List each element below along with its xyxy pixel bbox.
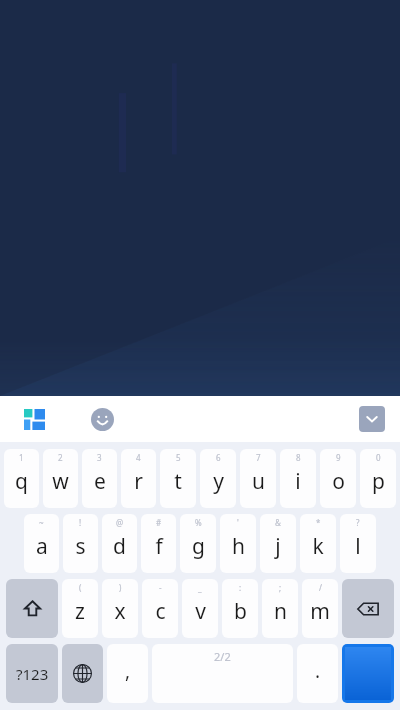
- button[interactable]: 1: [4, 449, 39, 508]
- staticText: #: [156, 517, 162, 528]
- staticText: n: [274, 597, 287, 626]
- staticText: u: [252, 467, 265, 496]
- staticText: ): [119, 582, 122, 593]
- button[interactable]: (: [62, 579, 98, 638]
- staticText: e: [94, 467, 106, 496]
- staticText: s: [75, 532, 86, 561]
- staticText: ;: [279, 582, 282, 593]
- staticText: ~: [39, 517, 44, 528]
- staticText: k: [312, 532, 324, 561]
- staticText: t: [174, 467, 182, 496]
- button[interactable]: Change language: [62, 644, 103, 703]
- staticText: r: [134, 467, 143, 496]
- staticText: !: [79, 517, 82, 528]
- staticText: p: [372, 467, 385, 496]
- staticText: 1: [19, 452, 24, 463]
- button[interactable]: -: [142, 579, 178, 638]
- button[interactable]: ?: [340, 514, 376, 573]
- button[interactable]: 8: [280, 449, 316, 508]
- button[interactable]: Shift: [6, 579, 58, 638]
- staticText: @: [116, 517, 124, 528]
- staticText: %: [195, 517, 202, 528]
- button[interactable]: ': [220, 514, 256, 573]
- staticText: ,: [125, 658, 131, 684]
- button[interactable]: 0: [360, 449, 396, 508]
- button[interactable]: Backspace: [342, 579, 394, 638]
- staticText: 3: [97, 452, 102, 463]
- staticText: .: [315, 658, 321, 684]
- staticText: d: [113, 532, 126, 561]
- button[interactable]: %: [180, 514, 216, 573]
- staticText: v: [195, 597, 206, 626]
- staticText: l: [355, 532, 361, 561]
- button[interactable]: *: [300, 514, 336, 573]
- button[interactable]: ~: [24, 514, 59, 573]
- button[interactable]: &: [260, 514, 296, 573]
- staticText: /: [319, 582, 322, 593]
- staticText: 0: [376, 452, 381, 463]
- staticText: z: [75, 597, 85, 626]
- staticText: y: [213, 467, 224, 496]
- button[interactable]: 9: [320, 449, 356, 508]
- button[interactable]: 5: [160, 449, 196, 508]
- button[interactable]: /: [302, 579, 338, 638]
- button[interactable]: ?123: [6, 644, 58, 703]
- button[interactable]: @: [102, 514, 137, 573]
- staticText: (: [79, 582, 82, 593]
- button[interactable]: ,: [107, 644, 148, 703]
- button[interactable]: ): [102, 579, 138, 638]
- staticText: g: [192, 532, 205, 561]
- staticText: *: [316, 517, 321, 528]
- button[interactable]: _: [182, 579, 218, 638]
- staticText: 2: [58, 452, 63, 463]
- staticText: x: [114, 597, 126, 626]
- staticText: _: [198, 582, 202, 593]
- button[interactable]: 4: [121, 449, 156, 508]
- staticText: ?123: [16, 664, 49, 684]
- button[interactable]: .: [297, 644, 338, 703]
- staticText: 8: [296, 452, 301, 463]
- staticText: 6: [216, 452, 221, 463]
- staticText: c: [155, 597, 166, 626]
- button[interactable]: 2: [43, 449, 78, 508]
- staticText: f: [155, 532, 163, 561]
- button[interactable]: Stickers: [18, 403, 50, 435]
- button[interactable]: 7: [240, 449, 276, 508]
- staticText: j: [275, 532, 281, 561]
- button[interactable]: Hide keyboard: [359, 406, 385, 432]
- staticText: 7: [256, 452, 261, 463]
- button[interactable]: :: [222, 579, 258, 638]
- staticText: &: [275, 517, 281, 528]
- staticText: 2/2: [214, 649, 231, 664]
- staticText: w: [52, 467, 69, 496]
- staticText: 4: [136, 452, 141, 463]
- button[interactable]: Space: [152, 644, 293, 703]
- staticText: h: [232, 532, 245, 561]
- staticText: o: [332, 467, 345, 496]
- staticText: ': [237, 517, 239, 528]
- staticText: a: [36, 532, 48, 561]
- staticText: b: [234, 597, 247, 626]
- staticText: i: [295, 467, 301, 496]
- button[interactable]: 6: [200, 449, 236, 508]
- button[interactable]: !: [63, 514, 98, 573]
- button[interactable]: 3: [82, 449, 117, 508]
- staticText: q: [15, 467, 28, 496]
- button[interactable]: ;: [262, 579, 298, 638]
- button[interactable]: Enter: [342, 644, 394, 703]
- staticText: -: [159, 582, 162, 593]
- staticText: 5: [176, 452, 181, 463]
- staticText: 9: [336, 452, 341, 463]
- button[interactable]: #: [141, 514, 176, 573]
- button[interactable]: Emoji: [86, 403, 118, 435]
- staticText: ?: [356, 517, 360, 528]
- staticText: m: [310, 597, 330, 626]
- staticText: :: [239, 582, 242, 593]
